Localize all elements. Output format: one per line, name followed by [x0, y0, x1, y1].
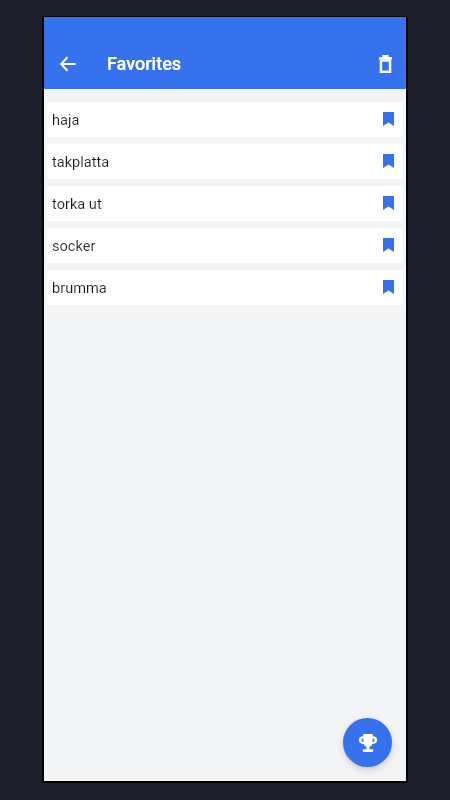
button[interactable]: Back — [48, 44, 88, 84]
staticText: brumma — [52, 279, 107, 296]
staticText: takplatta — [52, 153, 110, 170]
button[interactable]: haja — [47, 102, 403, 137]
button[interactable]: torka ut — [47, 186, 403, 221]
staticText: Favorites — [107, 53, 182, 74]
button[interactable]: Achievements — [343, 718, 392, 767]
button[interactable]: Remove bookmark — [373, 272, 403, 302]
button[interactable]: brumma — [47, 270, 403, 305]
staticText: socker — [52, 237, 96, 254]
button[interactable]: Remove bookmark — [373, 146, 403, 176]
button[interactable]: Remove bookmark — [373, 188, 403, 218]
staticText: haja — [52, 111, 80, 128]
button[interactable]: Delete all — [365, 44, 405, 84]
button[interactable]: takplatta — [47, 144, 403, 179]
button[interactable]: Remove bookmark — [373, 104, 403, 134]
staticText: torka ut — [52, 195, 102, 212]
button[interactable]: Remove bookmark — [373, 230, 403, 260]
button[interactable]: socker — [47, 228, 403, 263]
